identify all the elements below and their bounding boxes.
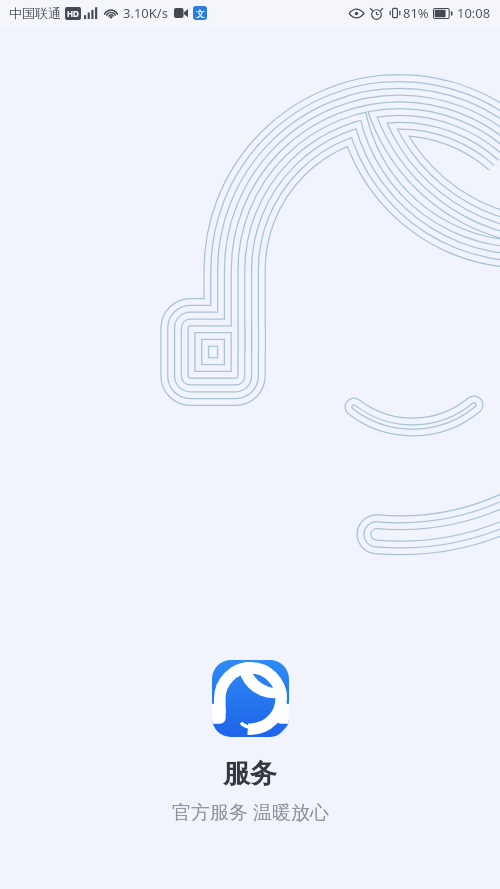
staticText: HD: [67, 8, 79, 19]
staticText: 10:08: [457, 4, 491, 22]
staticText: 中国联通: [9, 5, 61, 21]
staticText: 3.10K/s: [123, 4, 168, 22]
staticText: 服务: [223, 757, 277, 791]
button[interactable]: [212, 660, 289, 737]
staticText: 文: [196, 8, 205, 19]
staticText: 官方服务 温暖放心: [172, 799, 329, 825]
staticText: 81%: [403, 4, 429, 22]
